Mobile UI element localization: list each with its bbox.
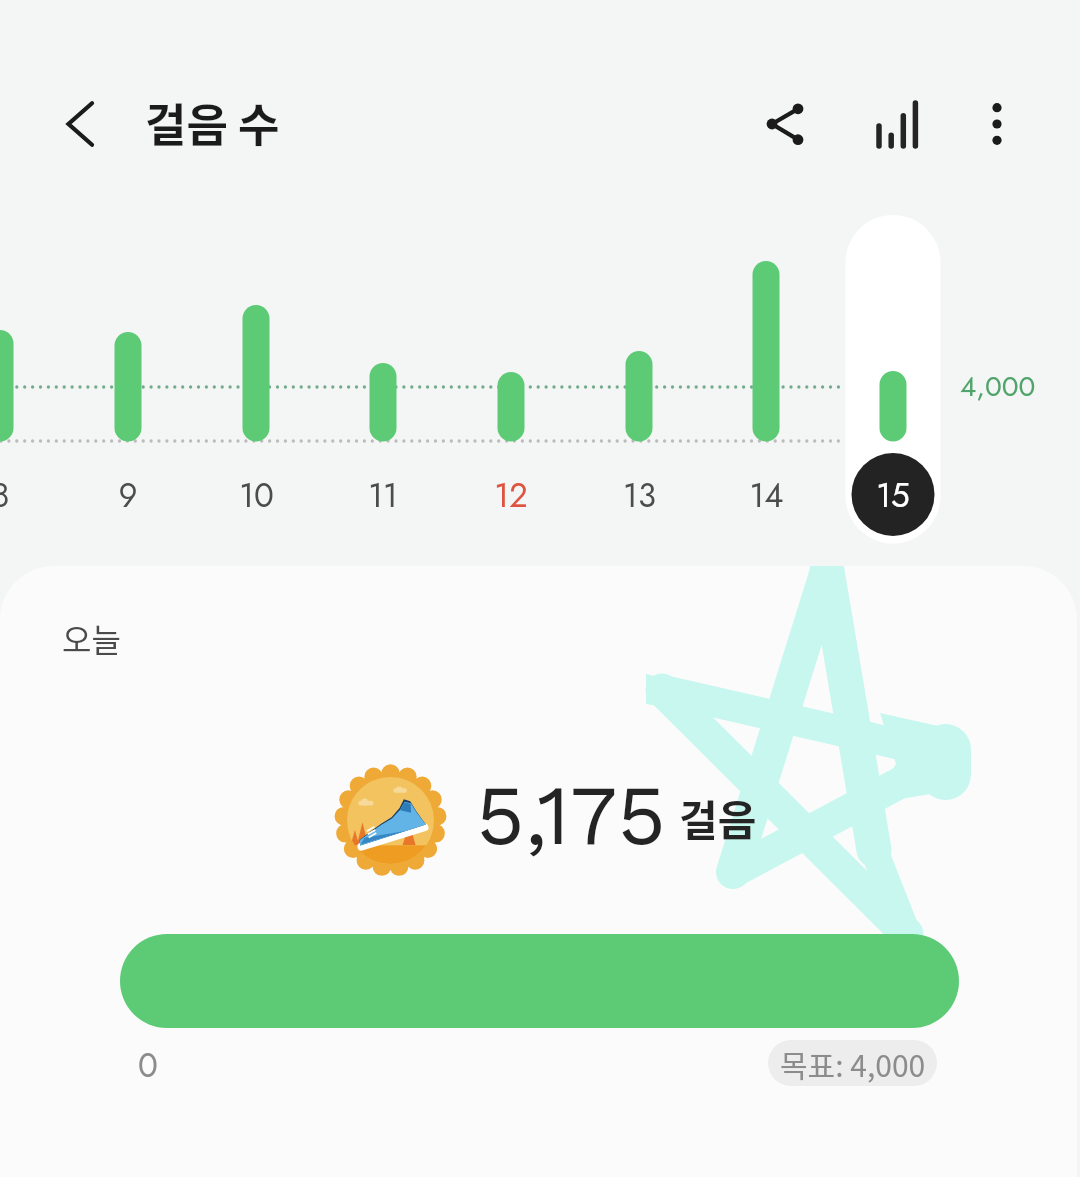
button[interactable]: Steps badge [334,764,447,877]
button[interactable]: 14 [716,468,816,524]
staticText: 5,175 [476,766,667,865]
staticText: 걸음 수 [145,90,280,155]
button[interactable]: Step goal progress [120,934,959,1028]
button[interactable]: 9 [78,468,178,524]
staticText: 걸음 [679,787,757,848]
button[interactable]: Back [28,72,132,176]
button[interactable]: 10 [206,468,306,524]
button[interactable]: 13 [589,468,689,524]
staticText: 10 [239,472,274,520]
button[interactable]: 목표: 4,000 [768,1040,937,1086]
button[interactable]: 11 [333,468,433,524]
staticText: 13 [623,472,656,520]
button[interactable]: 12 [461,468,561,524]
staticText: 15 [876,472,910,520]
button[interactable]: Trends [844,72,948,176]
staticText: 11 [368,472,398,520]
staticText: 14 [749,472,784,520]
staticText: 오늘 [62,615,121,661]
button[interactable]: 8 [0,468,50,524]
staticText: 4,000 [960,366,1036,406]
staticText: 9 [118,472,138,520]
button[interactable]: Share [733,72,837,176]
staticText: 12 [494,472,528,520]
staticText: 0 [138,1042,158,1090]
staticText: 목표: 4,000 [780,1042,926,1085]
button[interactable]: More options [945,72,1049,176]
staticText: 8 [0,472,10,520]
button[interactable]: 15 [843,468,943,524]
